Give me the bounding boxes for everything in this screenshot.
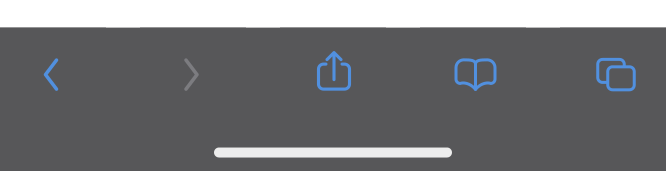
- button[interactable]: Tabs: [560, 28, 666, 122]
- button[interactable]: Bookmarks: [420, 28, 526, 122]
- button[interactable]: Share: [280, 28, 386, 122]
- button[interactable]: Forward: [140, 28, 246, 122]
- button[interactable]: Back: [0, 28, 106, 122]
